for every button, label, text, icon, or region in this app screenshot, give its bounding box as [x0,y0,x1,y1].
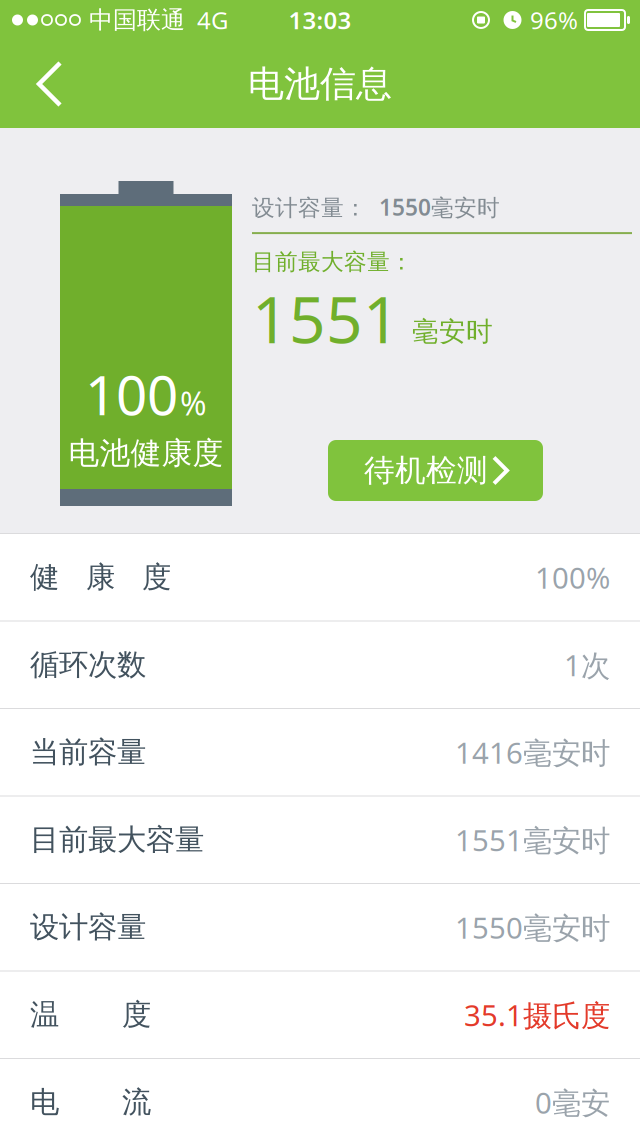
staticText: 设计容量： 1550毫安时 [252,192,500,222]
staticText: 循环次数 [30,647,146,683]
staticText: 1次 [564,645,610,684]
staticText: 当前容量 [30,734,146,770]
staticText: 毫安时 [412,315,493,348]
staticText: 设计容量 [30,909,146,945]
staticText: 目前最大容量： [252,248,413,276]
staticText: 目前最大容量 [30,822,204,858]
staticText: 温 度 [30,997,151,1033]
staticText: 100 [85,358,178,430]
staticText: 1551 [252,276,400,361]
staticText: 1416毫安时 [455,733,610,772]
staticText: 电池健康度 [68,434,223,472]
staticText: 待机检测 [364,452,488,489]
staticText: 中国联通 [89,5,185,35]
staticText: 电 流 [30,1084,151,1120]
staticText: 4G [197,4,228,36]
staticText: % [180,382,207,424]
staticText: 100% [535,558,610,597]
staticText: 1550毫安时 [455,908,610,947]
staticText: 35.1摄氏度 [464,995,610,1034]
staticText: 0毫安 [535,1083,610,1122]
staticText: 健 康 度 [30,559,171,595]
button[interactable]: 待机检测 [328,440,543,501]
button[interactable] [0,40,60,128]
staticText: 1551毫安时 [455,820,610,859]
staticText: 96% [530,4,578,36]
staticText: 13:03 [288,4,351,36]
staticText: 电池信息 [248,62,392,106]
